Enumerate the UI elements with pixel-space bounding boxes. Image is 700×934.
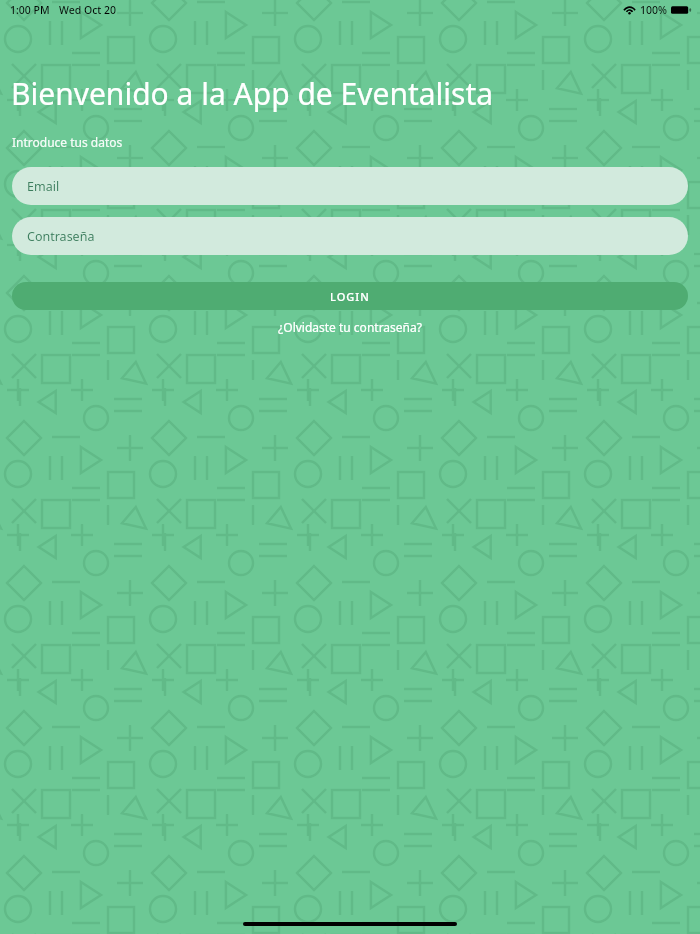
other: Home bbox=[243, 922, 457, 926]
staticText: LOGIN bbox=[330, 289, 370, 304]
button[interactable]: LOGIN bbox=[12, 282, 688, 310]
button[interactable]: ¿Olvidaste tu contraseña? bbox=[270, 317, 430, 337]
staticText: Wed Oct 20 bbox=[59, 3, 117, 17]
button[interactable]: Contraseña bbox=[12, 217, 688, 255]
staticText: Bienvenido a la App de Eventalista bbox=[11, 73, 494, 114]
staticText: ¿Olvidaste tu contraseña? bbox=[278, 319, 422, 335]
staticText: 1:00 PM bbox=[10, 3, 50, 17]
staticText: Contraseña bbox=[27, 228, 95, 245]
staticText: Introduce tus datos bbox=[12, 134, 123, 150]
staticText: Email bbox=[27, 178, 60, 195]
staticText: 100% bbox=[640, 3, 667, 17]
button[interactable]: Email bbox=[12, 167, 688, 205]
